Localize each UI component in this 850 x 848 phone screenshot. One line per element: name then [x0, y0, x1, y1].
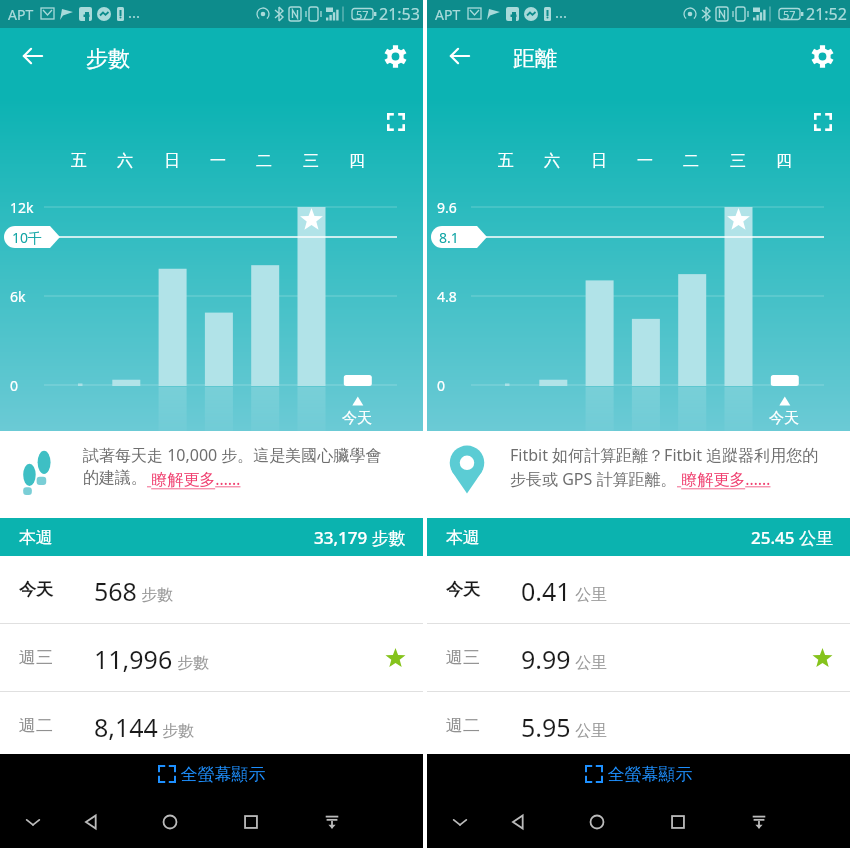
staticText: 週二: [19, 715, 94, 736]
staticText: Fitbit 如何計算距離？Fitbit 追蹤器利用您的: [510, 444, 819, 466]
staticText: APT: [435, 5, 461, 24]
button[interactable]: 本週: [427, 518, 850, 556]
staticText: 三: [303, 151, 319, 171]
staticText: 四: [349, 151, 365, 171]
staticText: 公里: [571, 651, 608, 673]
staticText: 週三: [19, 647, 94, 668]
staticText: 今天: [769, 409, 799, 428]
staticText: 一: [637, 151, 653, 171]
staticText: 六: [117, 151, 133, 171]
button[interactable]: Recents: [660, 804, 696, 840]
staticText: 21:52: [806, 3, 847, 25]
staticText: 步長或 GPS 計算距離。: [510, 468, 677, 490]
staticText: 步數: [173, 651, 210, 673]
staticText: APT: [8, 5, 34, 24]
staticText: 步數: [158, 719, 195, 741]
staticText: 9.99: [521, 642, 571, 676]
staticText: 週二: [446, 715, 521, 736]
staticText: 0: [437, 376, 446, 395]
staticText: 9.6: [437, 198, 457, 217]
button[interactable]: Back: [73, 804, 109, 840]
button[interactable]: Fitbit 如何計算距離？Fitbit 追蹤器利用您的: [427, 431, 850, 518]
staticText: 公里: [571, 719, 608, 741]
staticText: 一: [210, 151, 226, 171]
button[interactable]: 本週: [0, 518, 423, 556]
staticText: 全螢幕顯示: [603, 762, 693, 785]
button[interactable]: Recents: [233, 804, 269, 840]
staticText: 二: [256, 151, 272, 171]
staticText: 本週: [446, 527, 480, 548]
staticText: 33,179 步數: [314, 526, 406, 549]
staticText: 步數: [86, 45, 130, 73]
button[interactable]: Hide: [15, 804, 51, 840]
staticText: 10千: [12, 228, 43, 247]
staticText: 六: [544, 151, 560, 171]
button[interactable]: 全螢幕顯示: [585, 762, 693, 785]
button[interactable]: Fullscreen: [376, 102, 416, 142]
staticText: 11,996: [94, 642, 173, 676]
staticText: 今天: [19, 579, 94, 600]
staticText: 公里: [571, 583, 608, 605]
staticText: 57: [356, 7, 369, 22]
staticText: 12k: [10, 198, 34, 217]
staticText: 今天: [342, 409, 372, 428]
staticText: 日: [164, 151, 180, 171]
staticText: 本週: [19, 527, 53, 548]
staticText: 25.45 公里: [751, 526, 833, 549]
button[interactable]: 全螢幕顯示: [158, 762, 266, 785]
staticText: 4.8: [437, 287, 457, 306]
button[interactable]: 週三: [0, 624, 423, 691]
staticText: 試著每天走 10,000 步。這是美國心臟學會: [83, 444, 382, 466]
staticText: 8,144: [94, 710, 158, 744]
staticText: 全螢幕顯示: [176, 762, 266, 785]
staticText: 0.41: [521, 574, 571, 608]
staticText: 五: [71, 151, 87, 171]
staticText: 57: [783, 7, 796, 22]
staticText: 週三: [446, 647, 521, 668]
button[interactable]: 瞭解更多……: [677, 468, 771, 490]
staticText: 0: [10, 376, 19, 395]
button[interactable]: 週二: [0, 692, 423, 759]
button[interactable]: 瞭解更多……: [147, 468, 241, 490]
button[interactable]: Notifications: [314, 804, 350, 840]
button[interactable]: Home: [152, 804, 188, 840]
button[interactable]: Settings: [371, 32, 419, 80]
staticText: 8.1: [439, 228, 459, 247]
button[interactable]: Back: [436, 32, 484, 80]
staticText: 5.95: [521, 710, 571, 744]
button[interactable]: Hide: [442, 804, 478, 840]
staticText: 今天: [446, 579, 521, 600]
button[interactable]: Fullscreen: [803, 102, 843, 142]
button[interactable]: 今天: [0, 556, 423, 623]
staticText: 568: [94, 574, 137, 608]
staticText: 四: [776, 151, 792, 171]
staticText: 二: [683, 151, 699, 171]
staticText: 步數: [137, 583, 174, 605]
button[interactable]: 今天: [427, 556, 850, 623]
button[interactable]: Settings: [798, 32, 846, 80]
button[interactable]: Back: [9, 32, 57, 80]
button[interactable]: 試著每天走 10,000 步。這是美國心臟學會: [0, 431, 423, 518]
button[interactable]: Back: [500, 804, 536, 840]
staticText: 五: [498, 151, 514, 171]
staticText: 三: [730, 151, 746, 171]
button[interactable]: Notifications: [741, 804, 777, 840]
staticText: 的建議。: [83, 468, 147, 488]
button[interactable]: 週二: [427, 692, 850, 759]
staticText: 日: [591, 151, 607, 171]
button[interactable]: Home: [579, 804, 615, 840]
staticText: 21:53: [379, 3, 420, 25]
staticText: 6k: [10, 287, 26, 306]
staticText: 距離: [513, 45, 557, 73]
button[interactable]: 週三: [427, 624, 850, 691]
